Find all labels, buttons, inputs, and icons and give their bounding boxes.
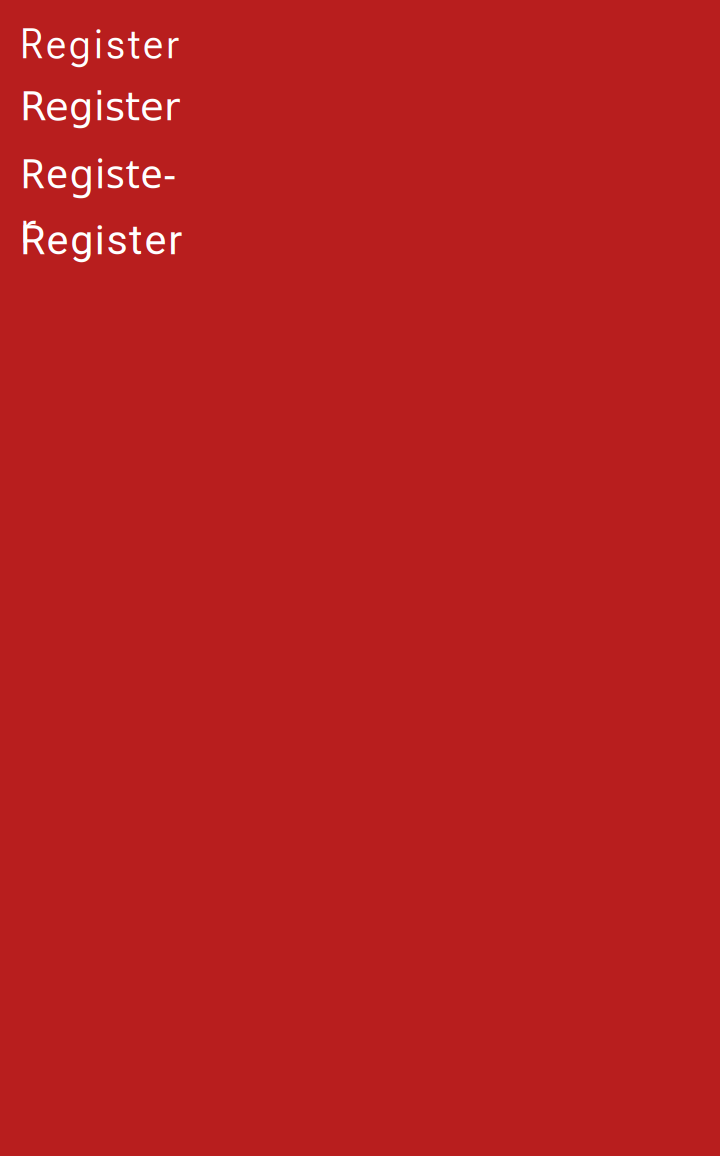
staticText: Register: [20, 145, 181, 200]
staticText: Register: [20, 84, 180, 129]
staticText: Register: [20, 20, 179, 68]
staticText: Register: [20, 216, 182, 264]
